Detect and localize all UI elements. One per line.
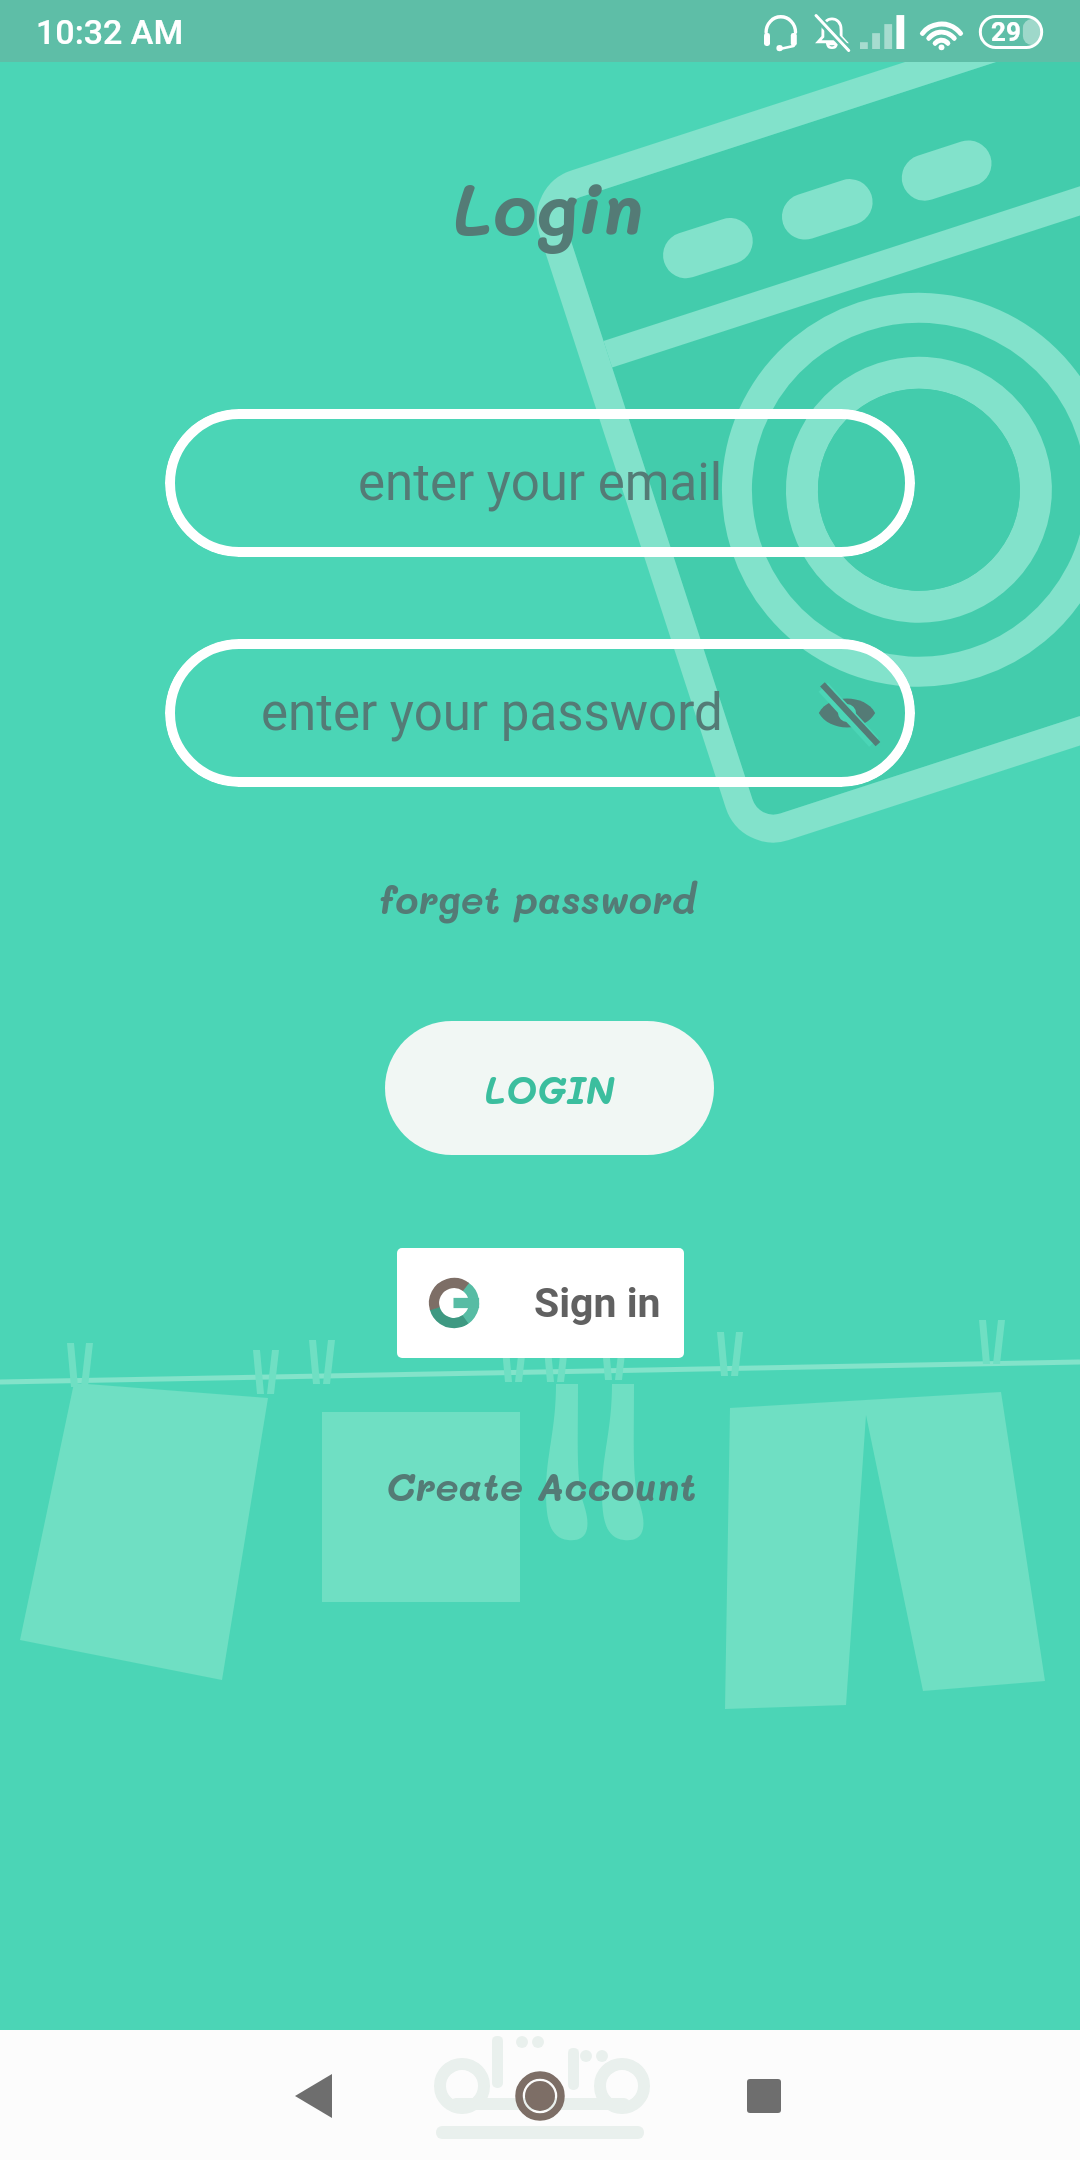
staticText: 29 xyxy=(991,17,1021,47)
staticText: enter your email xyxy=(358,453,723,513)
button[interactable]: Back xyxy=(266,2048,362,2144)
staticText: Sign in xyxy=(534,1279,661,1327)
staticText: enter your password xyxy=(261,683,723,743)
button[interactable]: Sign in xyxy=(397,1248,684,1358)
staticText: Login xyxy=(452,160,644,252)
button[interactable]: Create Account xyxy=(386,1460,697,1511)
staticText: 10:32 AM xyxy=(36,12,184,52)
staticText: LOGIN xyxy=(484,1064,615,1113)
button[interactable]: Show password xyxy=(815,681,879,745)
button[interactable]: Home xyxy=(492,2048,588,2144)
button[interactable]: enter your password xyxy=(165,639,915,787)
button[interactable]: LOGIN xyxy=(385,1021,714,1155)
button[interactable]: Recents xyxy=(716,2048,812,2144)
button[interactable]: forget password xyxy=(379,874,696,923)
button[interactable]: enter your email xyxy=(165,409,915,557)
